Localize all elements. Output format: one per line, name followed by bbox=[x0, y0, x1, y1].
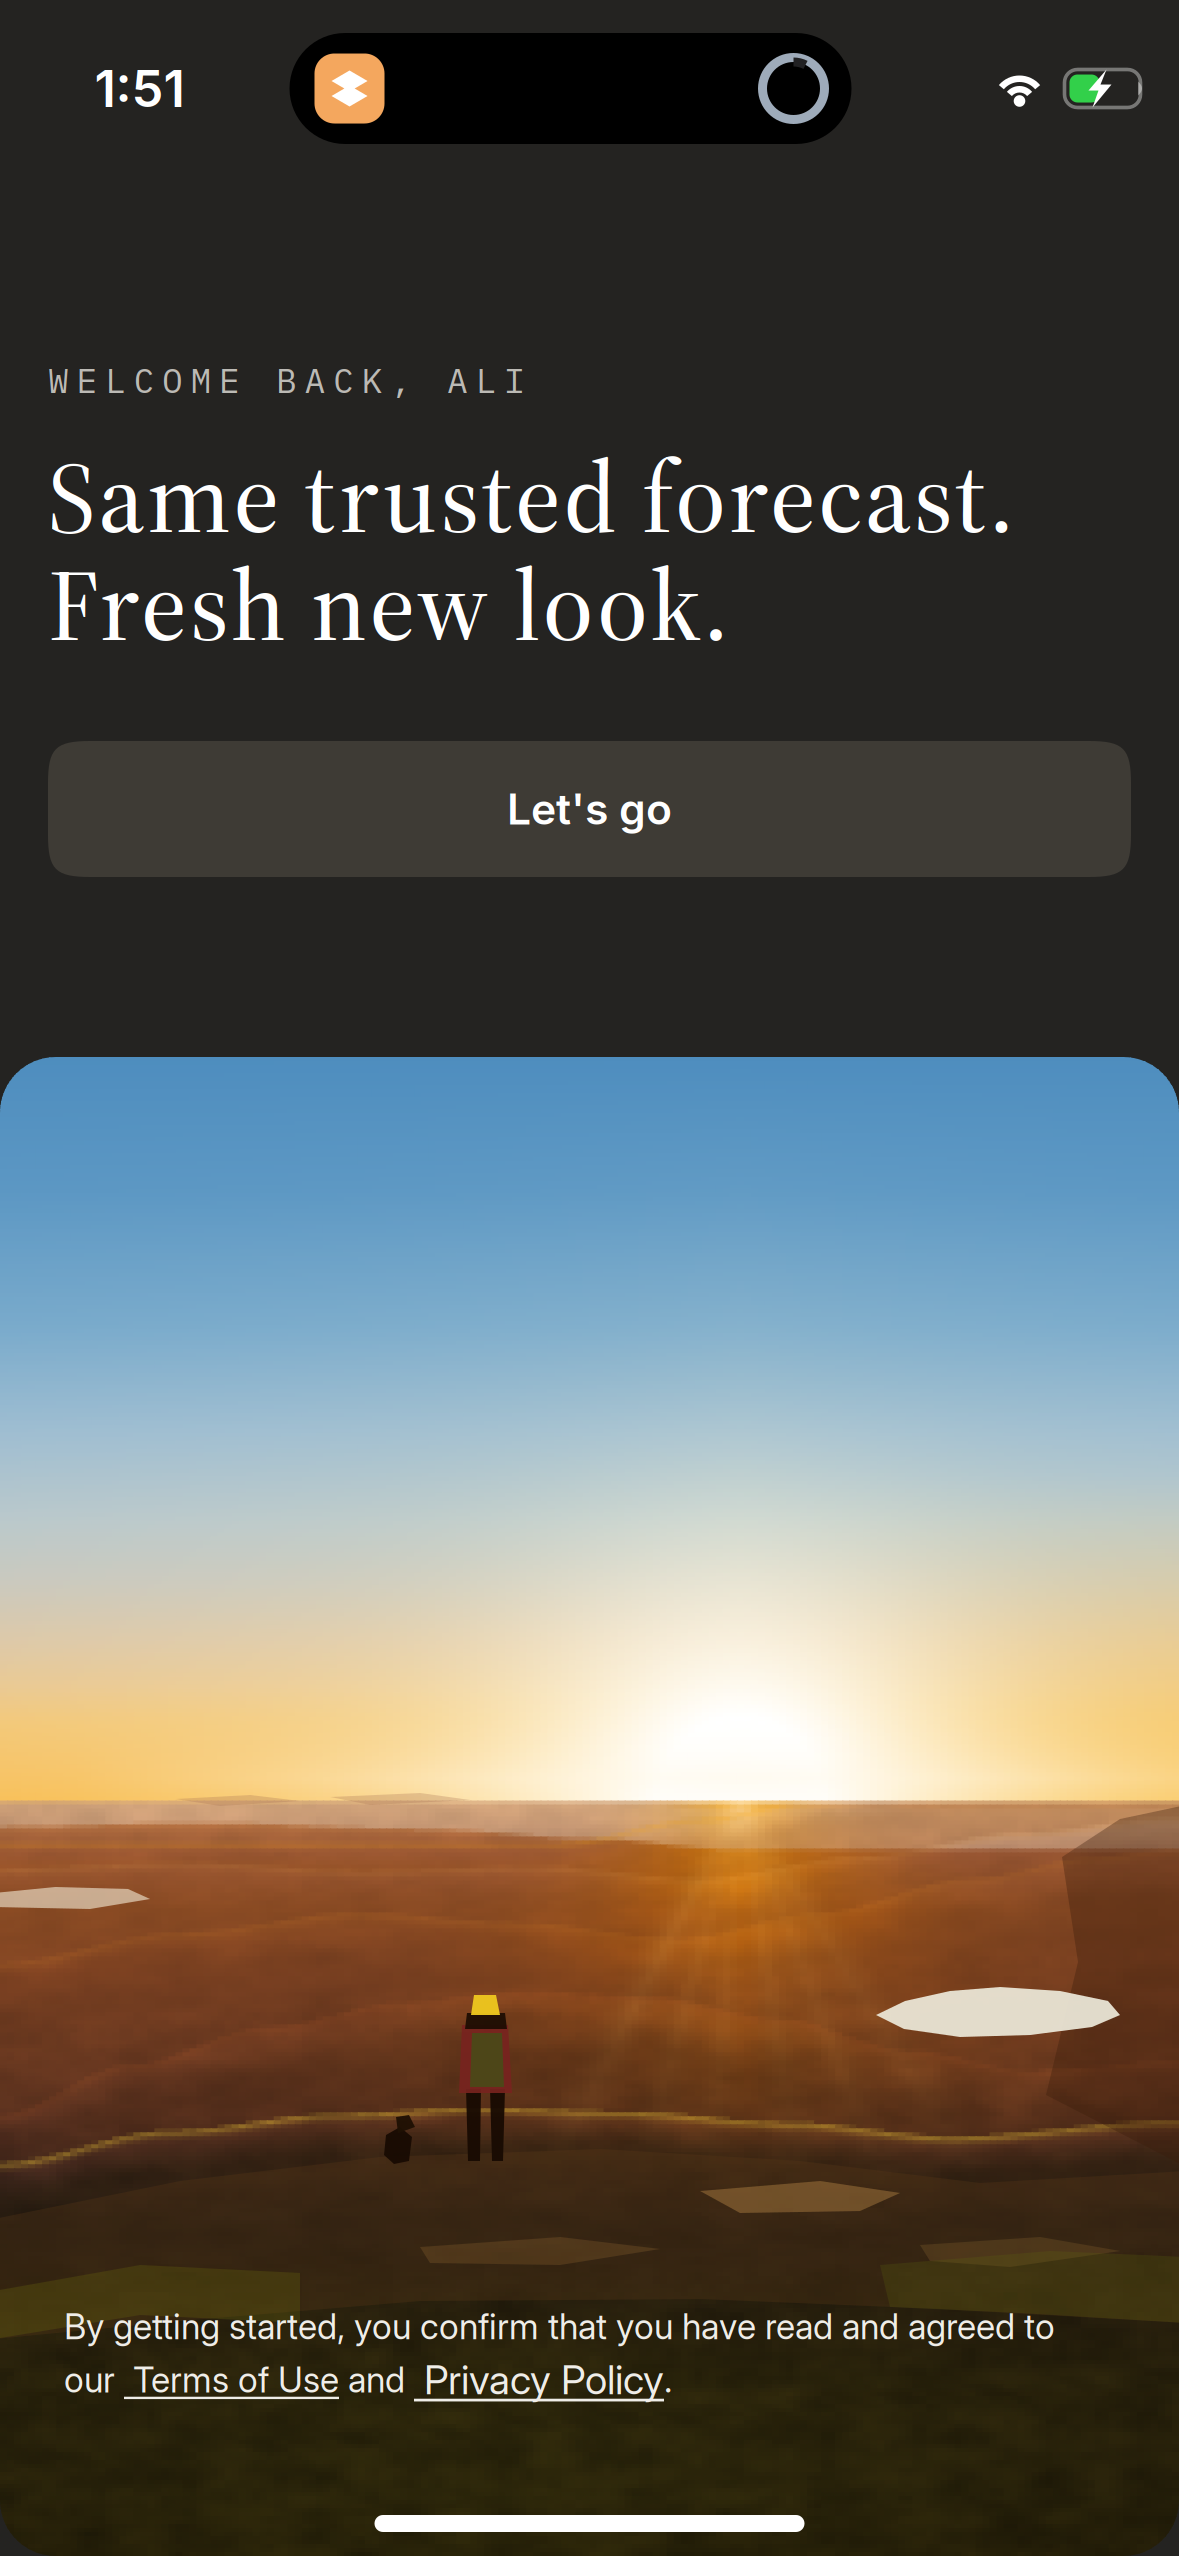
button[interactable]: Privacy Policy bbox=[414, 2356, 664, 2404]
staticText: our bbox=[64, 2359, 124, 2401]
staticText: By getting started, you confirm that you… bbox=[64, 2306, 1055, 2348]
staticText: Fresh new look. bbox=[48, 536, 729, 674]
staticText: Privacy Policy bbox=[414, 2356, 664, 2404]
staticText: Terms of Use bbox=[124, 2359, 339, 2401]
staticText: . bbox=[664, 2359, 672, 2401]
staticText: 1:51 bbox=[94, 58, 184, 119]
button[interactable]: Let's go bbox=[48, 741, 1131, 877]
staticText: Let's go bbox=[507, 783, 672, 835]
staticText: Same trusted forecast. bbox=[48, 428, 1014, 566]
button[interactable]: Terms of Use bbox=[124, 2359, 339, 2401]
staticText: WELCOME BACK, ALI bbox=[48, 357, 525, 403]
staticText: and bbox=[339, 2359, 414, 2401]
